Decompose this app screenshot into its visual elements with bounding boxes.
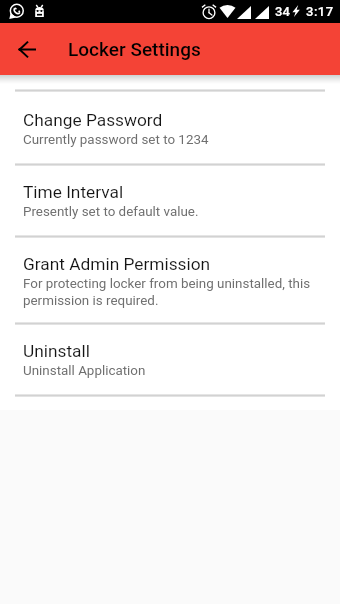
staticText: For protecting locker from being uninsta…	[23, 276, 322, 309]
staticText: Time Interval	[23, 182, 124, 202]
staticText: 34	[275, 4, 290, 19]
button[interactable]: Change Password	[0, 92, 340, 163]
button[interactable]: Time Interval	[0, 166, 340, 235]
staticText: Uninstall	[23, 341, 90, 361]
staticText: Grant Admin Permission	[23, 254, 211, 274]
staticText: 3:17	[306, 4, 334, 19]
button[interactable]: Back	[7, 29, 47, 69]
staticText: Currently password set to 1234	[23, 132, 209, 148]
staticText: Presently set to default value.	[23, 204, 199, 220]
button[interactable]: Uninstall	[0, 325, 340, 394]
staticText: Uninstall Application	[23, 363, 146, 379]
button[interactable]: Grant Admin Permission	[0, 238, 340, 322]
staticText: Change Password	[23, 110, 163, 130]
staticText: Locker Settings	[68, 38, 201, 60]
